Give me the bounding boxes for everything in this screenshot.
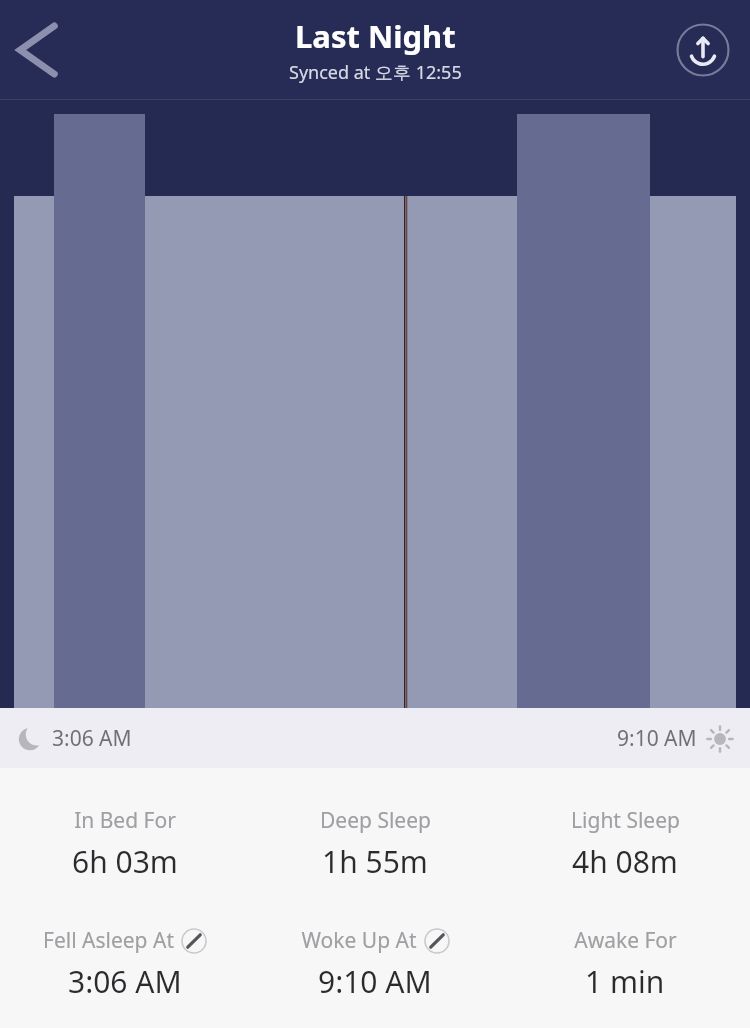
other: Edit Woke Up At — [424, 928, 450, 954]
button[interactable]: Back — [4, 18, 68, 82]
button[interactable]: Share — [676, 23, 730, 77]
staticText: Last Night — [295, 15, 456, 57]
staticText: 9:10 AM — [617, 724, 697, 753]
other: Edit Fell Asleep At — [181, 928, 207, 954]
staticText: Synced at 오후 12:55 — [289, 60, 462, 85]
button[interactable]: Woke Up At — [250, 926, 500, 1002]
staticText: Woke Up At — [301, 926, 417, 955]
staticText: 1 min — [585, 961, 665, 1002]
staticText: In Bed For — [74, 806, 176, 835]
staticText: Fell Asleep At — [43, 926, 174, 955]
staticText: 3:06 AM — [68, 961, 182, 1002]
staticText: 9:10 AM — [318, 961, 432, 1002]
staticText: 3:06 AM — [52, 724, 132, 753]
staticText: 1h 55m — [322, 841, 428, 882]
staticText: 6h 03m — [72, 841, 178, 882]
staticText: Light Sleep — [571, 806, 680, 835]
button[interactable]: Fell Asleep At — [0, 926, 250, 1002]
staticText: Deep Sleep — [320, 806, 431, 835]
staticText: 4h 08m — [572, 841, 678, 882]
staticText: Awake For — [574, 926, 677, 955]
